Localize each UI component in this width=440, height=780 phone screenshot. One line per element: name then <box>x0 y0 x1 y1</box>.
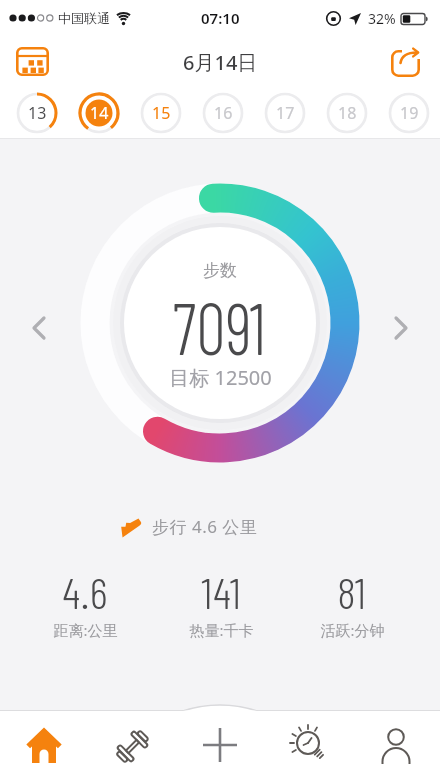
staticText: 18 <box>338 102 357 124</box>
button[interactable]: 15 <box>130 88 192 138</box>
staticText: 中国联通 <box>58 10 110 26</box>
staticText: 14 <box>90 102 109 124</box>
staticText: 目标 12500 <box>169 364 272 391</box>
staticText: 13 <box>28 102 47 124</box>
staticText: 活跃:分钟 <box>320 620 385 640</box>
button[interactable] <box>28 314 50 342</box>
button[interactable] <box>391 47 423 77</box>
staticText: 7091 <box>173 283 266 363</box>
button[interactable] <box>178 703 262 780</box>
button[interactable]: 14 <box>68 88 130 138</box>
staticText: 17 <box>276 102 295 124</box>
staticText: 15 <box>152 102 171 124</box>
staticText: 141 <box>201 565 242 618</box>
staticText: 4.6 <box>62 565 109 618</box>
staticText: 19 <box>400 102 419 124</box>
staticText: 距离:公里 <box>53 620 118 640</box>
button[interactable] <box>288 724 330 766</box>
button[interactable] <box>114 728 151 765</box>
button[interactable] <box>390 314 412 342</box>
staticText: 6月14日 <box>183 49 258 76</box>
button[interactable]: 17 <box>254 88 316 138</box>
button[interactable]: 步行 4.6 公里 <box>116 508 258 544</box>
staticText: 81 <box>337 565 367 618</box>
button[interactable] <box>26 728 62 764</box>
button[interactable] <box>378 726 414 766</box>
button[interactable] <box>16 47 49 77</box>
staticText: 步行 4.6 公里 <box>152 515 258 538</box>
staticText: 32% <box>368 9 396 28</box>
button[interactable]: 13 <box>6 88 68 138</box>
button[interactable]: 18 <box>316 88 378 138</box>
staticText: 热量:千卡 <box>189 620 254 640</box>
button[interactable]: 19 <box>378 88 440 138</box>
staticText: 07:10 <box>201 8 240 28</box>
staticText: 步数 <box>203 260 237 281</box>
button[interactable]: 16 <box>192 88 254 138</box>
staticText: 16 <box>214 102 233 124</box>
